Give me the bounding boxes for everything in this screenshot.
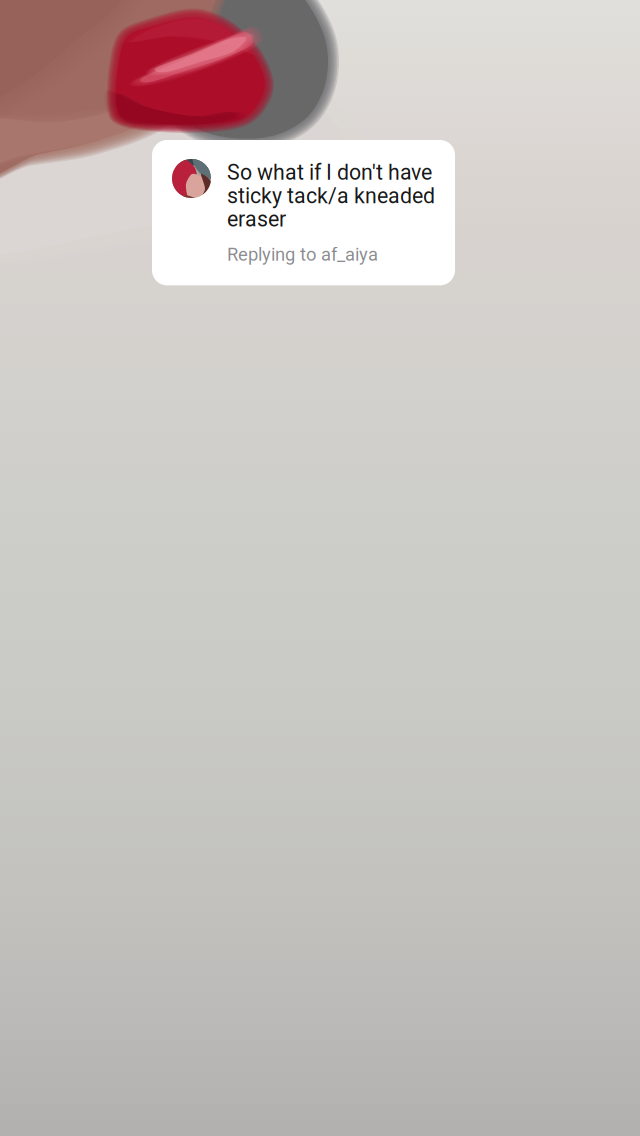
- staticText: So what if I don't have: [227, 160, 432, 185]
- staticText: sticky tack/a kneaded: [227, 183, 435, 208]
- staticText: Replying to af_aiya: [227, 244, 378, 265]
- staticText: eraser: [227, 207, 286, 232]
- button[interactable]: So what if I don't have: [152, 140, 455, 285]
